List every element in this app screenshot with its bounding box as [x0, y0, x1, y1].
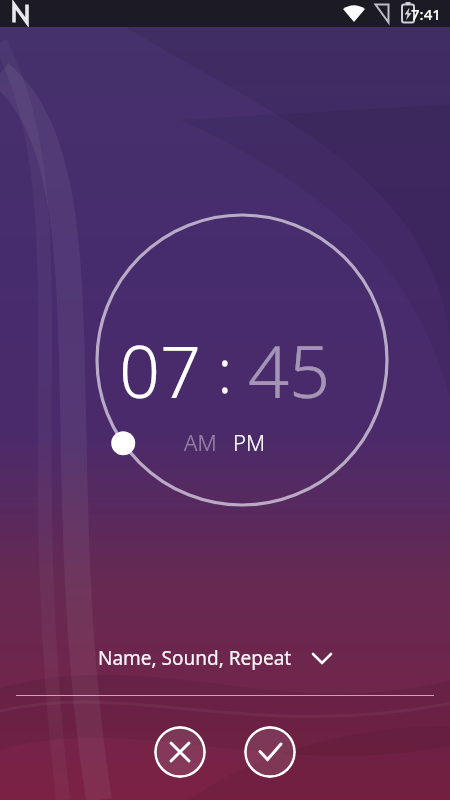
button[interactable]: PM — [225, 427, 274, 457]
staticText: : — [202, 329, 248, 411]
button[interactable]: 45 — [248, 321, 331, 419]
staticText: Name, Sound, Repeat — [98, 645, 292, 671]
button[interactable]: 07 — [119, 321, 202, 419]
staticText: 7:41 — [411, 4, 441, 24]
button[interactable]: Name, Sound, Repeat — [0, 637, 450, 679]
button[interactable]: Cancel — [154, 726, 206, 778]
button[interactable]: Confirm — [244, 726, 296, 778]
button[interactable]: AM — [176, 427, 225, 457]
